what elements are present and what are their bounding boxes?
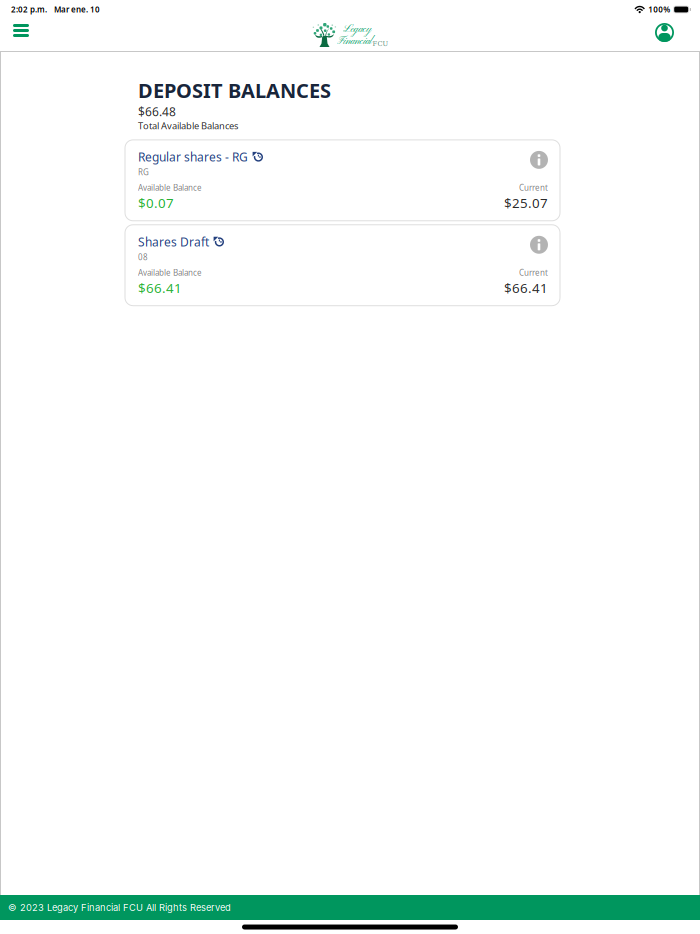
- staticText: 2:02 p.m.: [11, 4, 47, 15]
- staticText: 100%: [648, 4, 670, 15]
- button[interactable]: Menu: [0, 21, 42, 49]
- staticText: $25.07: [504, 194, 548, 212]
- staticText: Financial: [336, 35, 371, 48]
- staticText: 08: [138, 252, 148, 262]
- staticText: Current: [519, 182, 548, 193]
- button[interactable]: Account: [642, 21, 700, 49]
- staticText: Shares Draft: [138, 234, 209, 250]
- staticText: Current: [519, 267, 548, 278]
- staticText: Total Available Balances: [138, 119, 238, 132]
- button[interactable]: Shares Draft: [125, 225, 560, 306]
- staticText: $0.07: [138, 194, 174, 212]
- staticText: Regular shares - RG: [138, 149, 248, 165]
- staticText: © 2023 Legacy Financial FCU All Rights R…: [8, 902, 231, 913]
- staticText: Mar ene. 10: [54, 4, 100, 15]
- staticText: $66.41: [138, 279, 182, 297]
- staticText: Available Balance: [138, 182, 202, 193]
- staticText: RG: [138, 167, 149, 177]
- staticText: $66.41: [504, 279, 548, 297]
- staticText: Available Balance: [138, 267, 202, 278]
- staticText: $66.48: [138, 104, 176, 119]
- staticText: Legacy: [342, 23, 371, 36]
- staticText: FCU: [372, 40, 388, 48]
- staticText: DEPOSIT BALANCES: [138, 77, 331, 104]
- button[interactable]: Regular shares - RG: [125, 140, 560, 221]
